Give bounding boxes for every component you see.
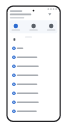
button[interactable]: Phone mockup [0, 0, 68, 128]
